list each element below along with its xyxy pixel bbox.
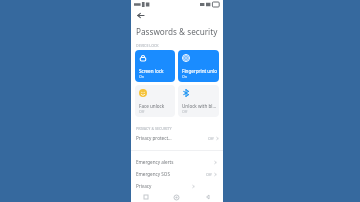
staticText: Off (208, 136, 214, 141)
button[interactable]: Unlock with blue (178, 85, 219, 117)
button[interactable]: Back (192, 192, 223, 202)
button[interactable]: Emergency SOS (131, 168, 223, 180)
button[interactable]: Screen lock (135, 50, 175, 82)
button[interactable]: Back (134, 9, 147, 22)
staticText: Emergency SOS (136, 171, 170, 177)
button[interactable]: Home (161, 192, 192, 202)
staticText: Passwords & security (136, 26, 218, 37)
staticText: PRIVACY & SECURITY (136, 126, 172, 131)
staticText: Emergency alerts (136, 159, 174, 165)
staticText: On (182, 74, 188, 79)
button[interactable]: Emergency alerts (131, 156, 223, 168)
staticText: Off (182, 109, 188, 114)
button[interactable]: Recents (131, 192, 161, 202)
button[interactable]: Fingerprint unlo (178, 50, 219, 82)
staticText: On (139, 74, 145, 79)
staticText: Off (139, 109, 145, 114)
staticText: Screen lock (139, 68, 164, 74)
button[interactable]: Privacy protection password (131, 132, 223, 144)
staticText: Privacy protection password (136, 135, 172, 141)
staticText: DEVICE LOCK (136, 43, 159, 48)
staticText: Fingerprint unlo (182, 68, 217, 74)
staticText: Unlock with blue (182, 103, 217, 109)
staticText: Face unlock (139, 103, 165, 109)
button[interactable]: Privacy (131, 180, 223, 192)
staticText: Privacy (136, 183, 152, 189)
button[interactable]: Face unlock (135, 85, 175, 117)
staticText: Off (206, 172, 212, 177)
